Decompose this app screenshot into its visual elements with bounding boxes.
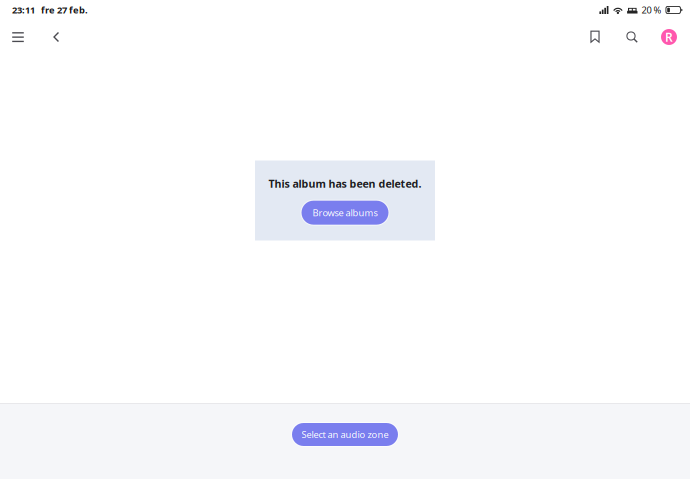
staticText: This album has been deleted. xyxy=(268,176,421,191)
button[interactable]: Search xyxy=(618,20,646,54)
button[interactable]: Account xyxy=(655,20,683,54)
staticText: fre 27 feb. xyxy=(41,4,88,16)
staticText: R xyxy=(665,29,673,45)
button[interactable]: Back xyxy=(44,20,68,54)
button[interactable]: Menu xyxy=(6,20,30,54)
staticText: 23:11 xyxy=(12,4,35,16)
button[interactable]: Browse albums xyxy=(300,200,389,226)
staticText: Select an audio zone xyxy=(301,428,388,441)
button[interactable]: Select an audio zone xyxy=(291,422,399,447)
staticText: Browse albums xyxy=(312,206,377,219)
button[interactable]: Bookmarks xyxy=(581,20,609,54)
staticText: 20 % xyxy=(641,4,661,16)
